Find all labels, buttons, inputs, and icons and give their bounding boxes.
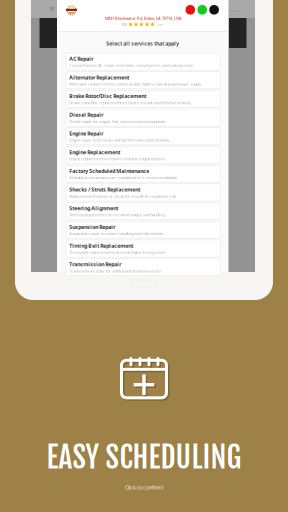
staticText: Suspension repair to restore handling an…	[69, 231, 163, 236]
button[interactable]: AC Repair	[66, 53, 220, 70]
staticText: 14831 Blackwater Rd, Baker, LA 70714, US…	[104, 15, 182, 21]
staticText: Suspension Repair	[69, 223, 115, 230]
staticText: Shocks / Struts Replacement	[69, 186, 140, 193]
button[interactable]: Engine Repair	[66, 128, 220, 145]
staticText: Alternator Replacement	[69, 74, 129, 81]
staticText: Engine Replacement	[69, 149, 120, 156]
staticText: Steering alignment to correct wheel angl…	[69, 212, 164, 217]
button[interactable]: Diesel Repair	[66, 109, 220, 126]
staticText: Comprehensive AC repair to fix leaks, co…	[69, 63, 193, 68]
staticText: Replacement of shocks or struts for smoo…	[69, 193, 176, 199]
button[interactable]: Timing Belt Replacement	[66, 240, 220, 257]
button[interactable]: Engine Replacement	[66, 146, 220, 164]
staticText: Engine replacement to restore complete e…	[69, 156, 164, 161]
staticText: Click to confirm!	[125, 484, 163, 491]
staticText: Factory Scheduled Maintenance	[69, 167, 149, 174]
button[interactable]: Shocks / Struts Replacement	[66, 184, 220, 201]
staticText: AC Repair	[69, 55, 93, 62]
staticText: (340)	[156, 23, 164, 26]
staticText: 4.9	[122, 22, 127, 27]
staticText: Diesel repair for engine, fuel, and emis…	[69, 119, 165, 124]
staticText: Diesel Repair	[69, 111, 103, 118]
staticText: Transmission Repair	[69, 261, 121, 268]
button[interactable]: Steering Alignment	[66, 203, 220, 220]
staticText: EASY SCHEDULING	[46, 439, 241, 476]
staticText: Timing Belt Replacement	[69, 242, 133, 249]
staticText: Engine repair to fix issues with perform…	[69, 137, 169, 143]
staticText: Brake Rotor/Disc Replacement	[69, 92, 146, 100]
button[interactable]: Factory Scheduled Maintenance	[66, 165, 220, 182]
button[interactable]: Alternator Replacement	[66, 72, 220, 89]
button[interactable]: Transmission Repair	[66, 259, 220, 276]
staticText: Brake rotor/disc replacement to restore …	[69, 100, 190, 105]
button[interactable]: Brake Rotor/Disc Replacement	[66, 90, 220, 107]
staticText: Steering Alignment	[69, 205, 118, 212]
button[interactable]: Suspension Repair	[66, 221, 220, 238]
staticText: Scheduled maintenance per manufacturer's…	[69, 175, 177, 180]
staticText: Alternator replacement to restore proper…	[69, 81, 201, 87]
staticText: Timing belt replacement to prevent engin…	[69, 249, 165, 255]
staticText: Transmission repair for shifting and dri…	[69, 268, 161, 273]
staticText: Engine Repair	[69, 130, 103, 137]
staticText: Select all services that apply	[106, 40, 179, 47]
